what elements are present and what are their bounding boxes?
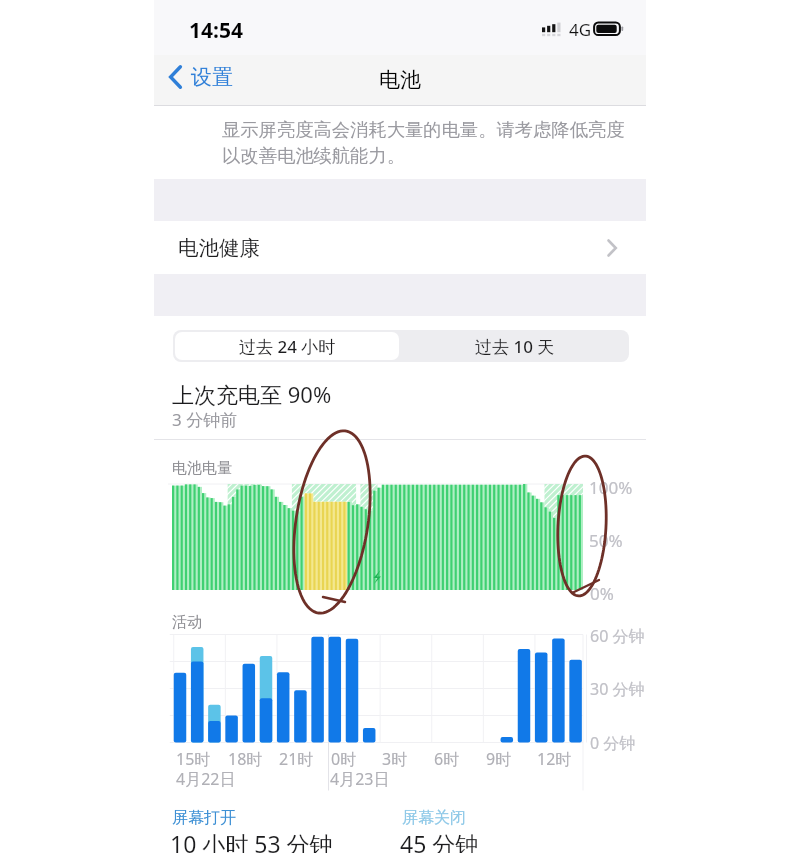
- button[interactable]: 过去 24 小时: [175, 332, 399, 360]
- staticText: 0时: [331, 748, 357, 770]
- staticText: 4G: [569, 18, 592, 41]
- staticText: 屏幕打开: [172, 808, 236, 828]
- staticText: 18时: [228, 748, 263, 770]
- staticText: 30 分钟: [590, 678, 645, 700]
- staticText: 上次充电至 90%: [172, 379, 332, 409]
- staticText: 过去 24 小时: [239, 335, 336, 358]
- staticText: 电池电量: [172, 459, 232, 478]
- staticText: 显示屏亮度高会消耗大量的电量。请考虑降低亮度 以改善电池续航能力。: [222, 118, 625, 168]
- button[interactable]: 过去 10 天: [401, 330, 629, 362]
- staticText: 6时: [434, 748, 460, 770]
- staticText: 电池健康: [178, 235, 260, 261]
- staticText: 4月23日: [330, 768, 390, 790]
- staticText: 4月22日: [176, 768, 236, 790]
- button[interactable]: 电池健康: [154, 221, 646, 274]
- staticText: 电池: [379, 67, 421, 93]
- staticText: 3 分钟前: [172, 408, 238, 431]
- staticText: 45 分钟: [400, 828, 479, 853]
- staticText: 12时: [537, 748, 572, 770]
- staticText: 过去 10 天: [475, 335, 555, 358]
- staticText: 9时: [486, 748, 512, 770]
- staticText: 50%: [589, 529, 623, 552]
- button[interactable]: 设置: [154, 64, 243, 90]
- staticText: 14:54: [189, 16, 243, 45]
- staticText: 60 分钟: [590, 625, 645, 647]
- staticText: 100%: [589, 476, 633, 499]
- staticText: 10 小时 53 分钟: [170, 828, 333, 853]
- staticText: 活动: [172, 613, 202, 632]
- staticText: 15时: [176, 748, 211, 770]
- staticText: 设置: [191, 64, 233, 90]
- staticText: 3时: [382, 748, 408, 770]
- staticText: 0%: [590, 582, 614, 605]
- staticText: 0 分钟: [590, 732, 636, 754]
- staticText: 屏幕关闭: [402, 808, 466, 828]
- staticText: 21时: [279, 748, 314, 770]
